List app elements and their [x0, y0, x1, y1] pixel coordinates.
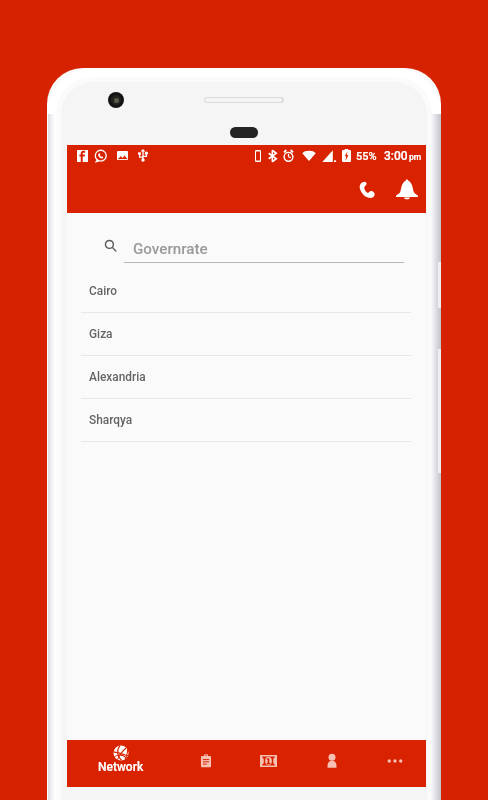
staticText: 55% [356, 150, 377, 163]
staticText: Sharqya [89, 413, 133, 427]
staticText: Giza [89, 327, 113, 341]
button[interactable]: Alexandria [67, 356, 426, 399]
button[interactable]: Giza [67, 313, 426, 356]
staticText: Alexandria [89, 370, 146, 384]
button[interactable]: Network [67, 740, 174, 787]
staticText: 3:00 [384, 149, 408, 163]
button[interactable]: Notifications [385, 169, 427, 211]
button[interactable]: Cairo [67, 270, 426, 313]
button[interactable]: More [363, 740, 426, 787]
button[interactable]: Payments [237, 740, 300, 787]
button[interactable]: Profile [300, 740, 363, 787]
staticText: pm [409, 152, 422, 162]
button[interactable]: Sharqya [67, 399, 426, 442]
staticText: Governrate [133, 240, 208, 258]
staticText: Cairo [89, 284, 118, 298]
button[interactable]: Orders [174, 740, 237, 787]
button[interactable]: Call [345, 169, 387, 211]
staticText: Network [98, 760, 144, 774]
